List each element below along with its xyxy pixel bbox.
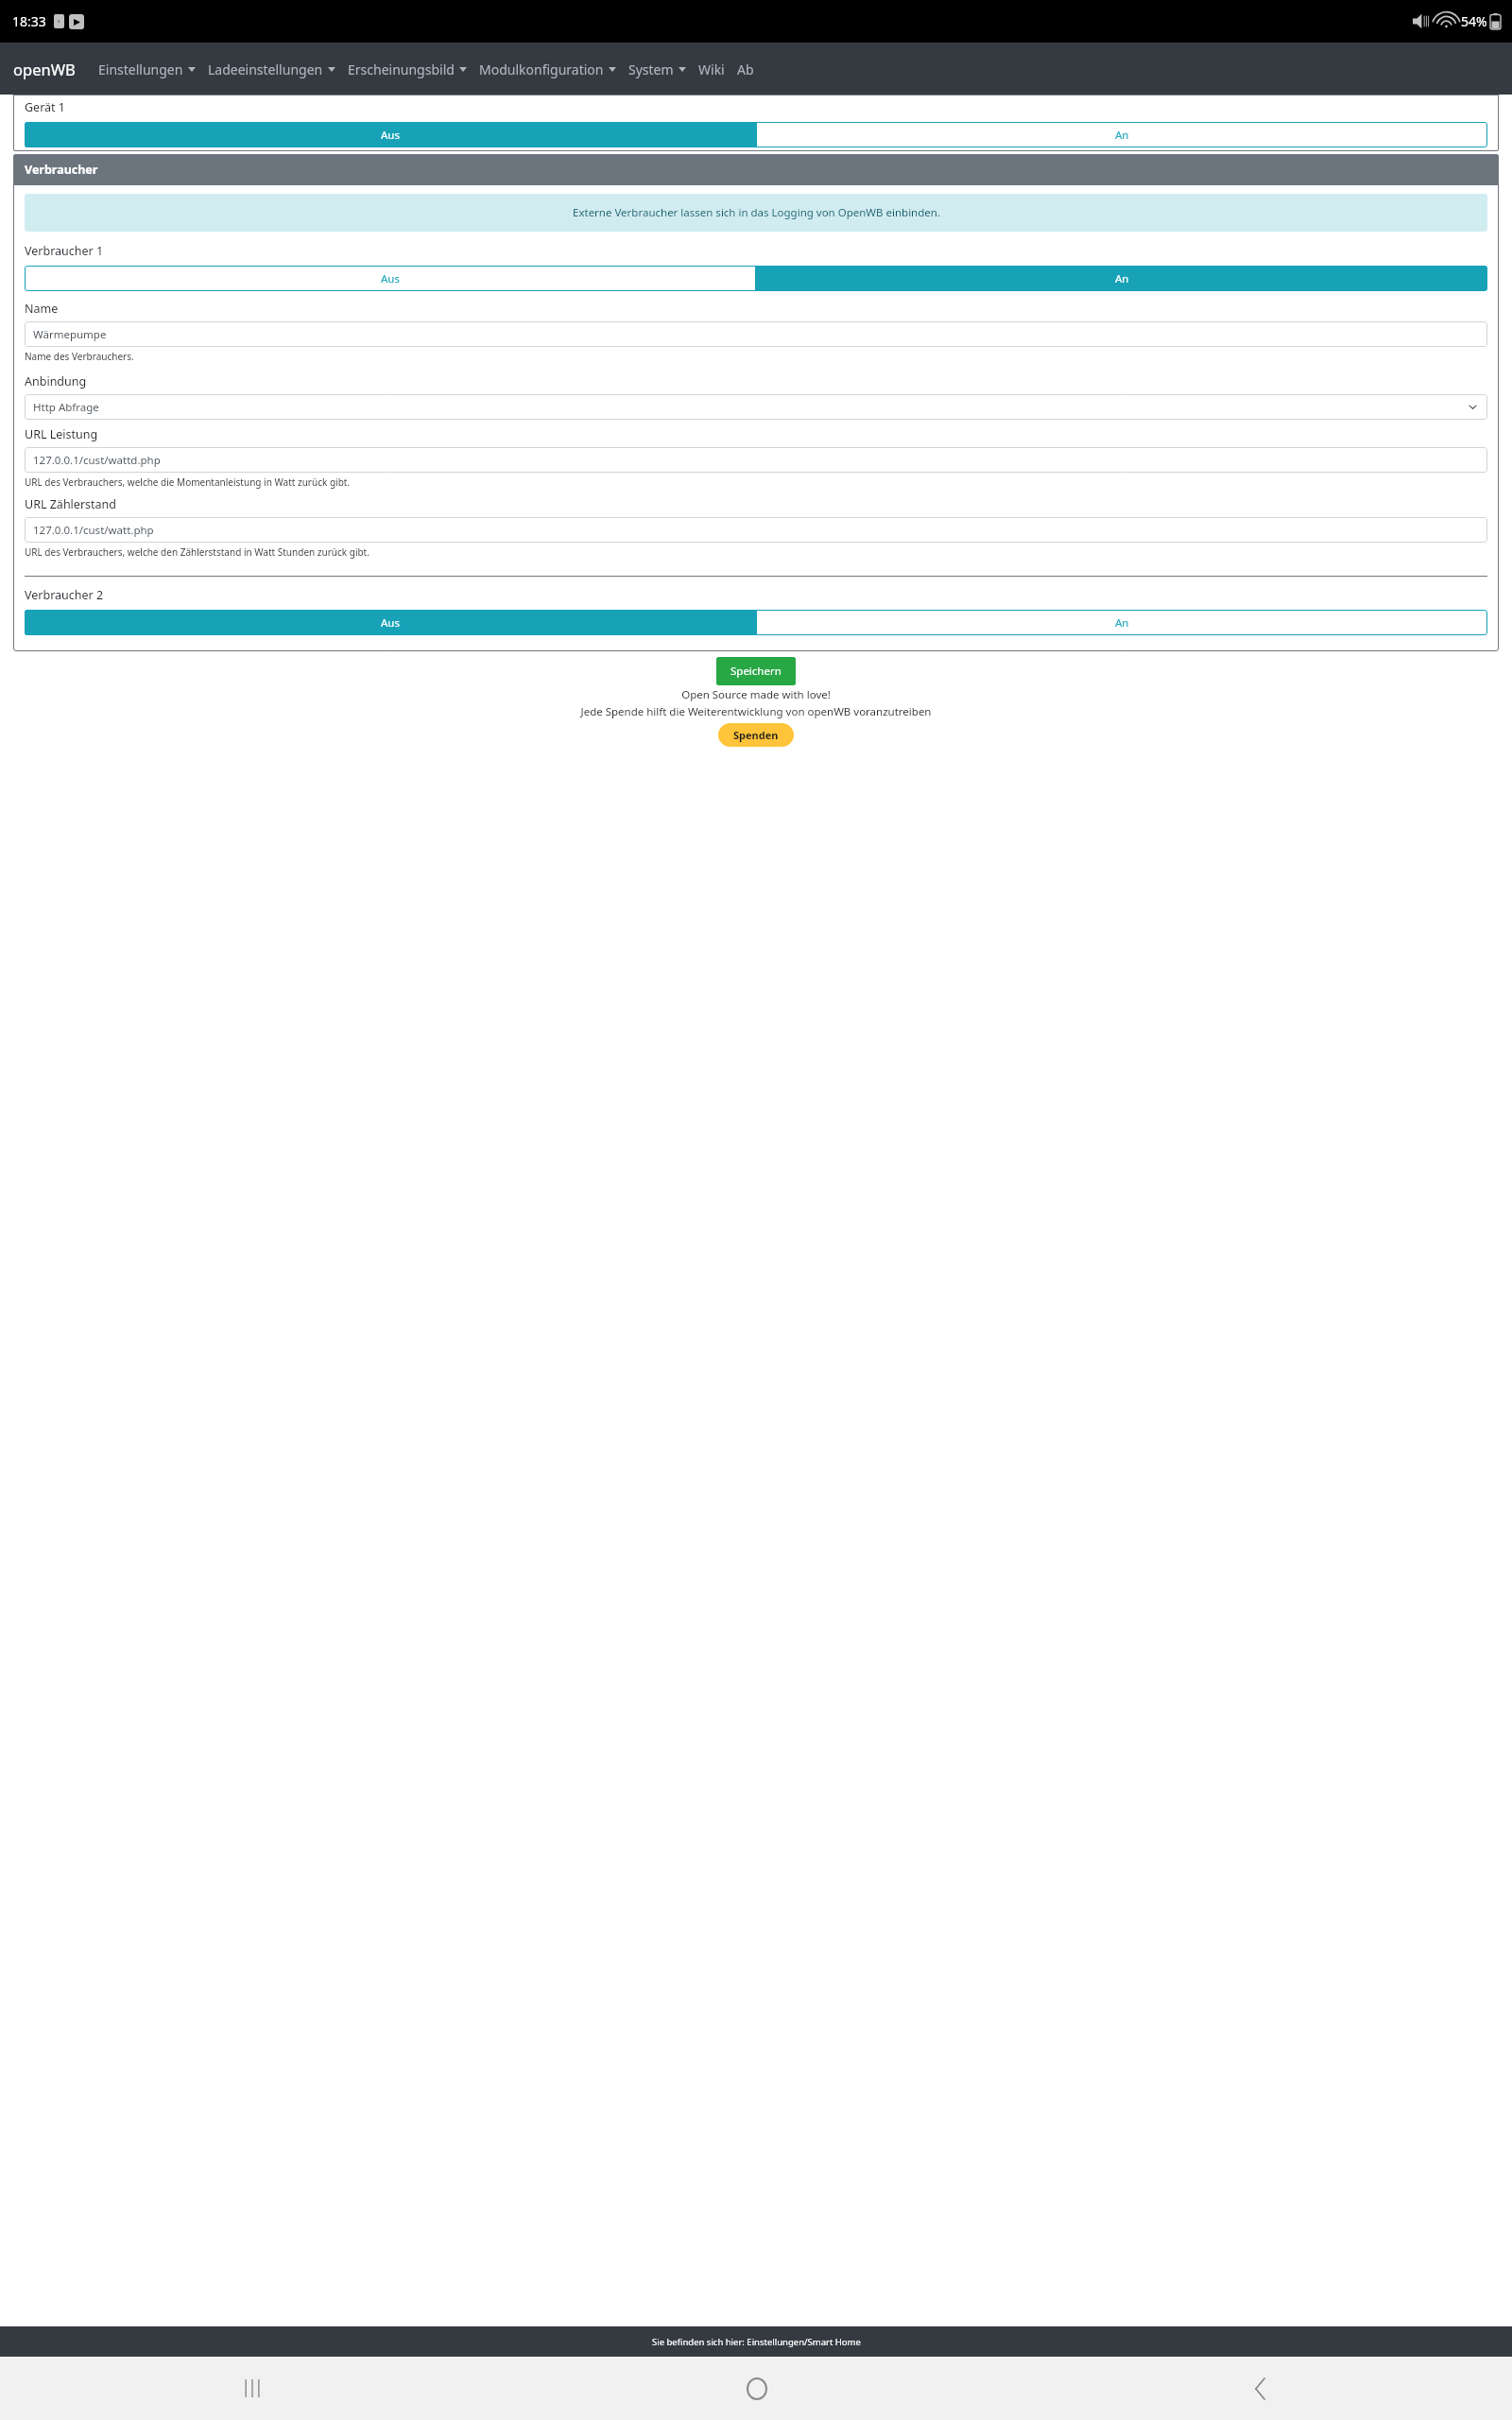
staticText: Ab <box>737 60 754 78</box>
staticText: Wärmepumpe <box>33 327 107 342</box>
button[interactable]: 127.0.0.1/cust/wattd.php <box>25 447 1487 473</box>
button[interactable]: openWB <box>13 59 76 79</box>
staticText: Speichern <box>730 664 782 679</box>
button[interactable]: Speichern <box>716 657 796 685</box>
staticText: Externe Verbraucher lassen sich in das L… <box>573 205 940 220</box>
button[interactable]: Wiki <box>698 60 725 78</box>
button[interactable]: Spenden <box>718 723 794 747</box>
staticText: URL des Verbrauchers, welche den Zählers… <box>25 545 369 559</box>
staticText: Gerät 1 <box>25 99 65 115</box>
staticText: Verbraucher 1 <box>25 243 104 259</box>
button[interactable]: Erscheinungsbild <box>348 60 467 78</box>
staticText: Sie befinden sich hier: Einstellungen/Sm… <box>652 2336 861 2348</box>
button[interactable]: Einstellungen <box>98 60 196 78</box>
button[interactable]: An <box>756 122 1487 147</box>
staticText: Spenden <box>733 728 779 742</box>
staticText: 127.0.0.1/cust/wattd.php <box>33 453 161 468</box>
staticText: URL Leistung <box>25 426 98 442</box>
button[interactable]: 127.0.0.1/cust/watt.php <box>25 517 1487 543</box>
staticText: 127.0.0.1/cust/watt.php <box>33 523 154 538</box>
staticText: Erscheinungsbild <box>348 60 455 78</box>
staticText: Aus <box>381 271 400 286</box>
staticText: Ladeeinstellungen <box>208 60 323 78</box>
staticText: Verbraucher <box>25 162 98 178</box>
staticText: Wiki <box>698 60 725 78</box>
button[interactable]: System <box>628 60 686 78</box>
button[interactable]: An <box>756 610 1487 635</box>
staticText: Verbraucher 2 <box>25 587 104 603</box>
button[interactable]: Aus <box>25 610 756 635</box>
button[interactable]: Recent apps <box>0 2357 505 2420</box>
staticText: URL des Verbrauchers, welche die Momenta… <box>25 475 351 489</box>
staticText: Einstellungen <box>98 60 183 78</box>
staticText: 54% <box>1461 12 1487 30</box>
staticText: An <box>1115 271 1129 286</box>
staticText: URL Zählerstand <box>25 496 116 512</box>
button[interactable]: Home <box>505 2357 1008 2420</box>
staticText: Aus <box>381 615 400 631</box>
button[interactable]: Http Abfrage <box>25 394 1487 420</box>
button[interactable]: An <box>756 266 1487 291</box>
staticText: Jede Spende hilft die Weiterentwicklung … <box>0 704 1512 719</box>
button[interactable]: Ab <box>737 60 754 78</box>
button[interactable]: Ladeeinstellungen <box>208 60 335 78</box>
button[interactable]: Aus <box>25 122 756 147</box>
staticText: 18:33 <box>12 12 46 30</box>
staticText: Http Abfrage <box>33 400 99 415</box>
staticText: Modulkonfiguration <box>479 60 604 78</box>
staticText: Name des Verbrauchers. <box>25 350 134 363</box>
staticText: Name <box>25 301 59 317</box>
staticText: openWB <box>13 59 76 79</box>
staticText: An <box>1115 128 1129 143</box>
staticText: Anbindung <box>25 373 87 389</box>
button[interactable]: Modulkonfiguration <box>479 60 616 78</box>
button[interactable]: Back <box>1008 2357 1512 2420</box>
staticText: An <box>1115 615 1129 631</box>
staticText: System <box>628 60 674 78</box>
button[interactable]: Aus <box>25 266 756 291</box>
staticText: Aus <box>381 128 400 143</box>
button[interactable]: Wärmepumpe <box>25 321 1487 347</box>
staticText: Open Source made with love! <box>0 687 1512 702</box>
staticText: s <box>58 18 60 25</box>
